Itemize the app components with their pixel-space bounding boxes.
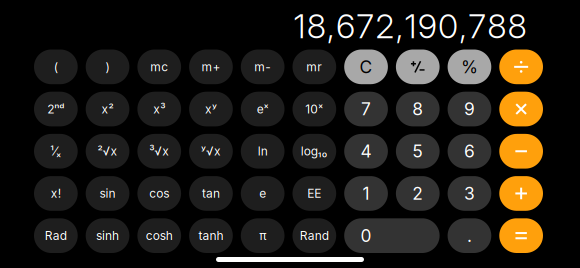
button[interactable]: ln xyxy=(241,134,284,169)
staticText: 0 xyxy=(438,6,458,46)
staticText: 2ⁿᵈ xyxy=(47,102,64,116)
button[interactable]: ʸ√x xyxy=(189,134,233,169)
staticText: ¹⁄ₓ xyxy=(50,144,61,158)
staticText: ³√x xyxy=(149,144,169,158)
button[interactable]: ) xyxy=(86,49,129,84)
staticText: C xyxy=(360,56,373,77)
staticText: ²√x xyxy=(98,144,118,158)
staticText: 8 xyxy=(487,6,506,46)
button[interactable]: 7 xyxy=(344,92,388,126)
staticText: 1 xyxy=(363,183,370,204)
button[interactable]: EE xyxy=(292,176,336,211)
button[interactable]: 9 xyxy=(448,92,491,126)
staticText: 7 xyxy=(356,6,374,46)
button[interactable]: 2 xyxy=(396,176,440,211)
button[interactable]: log₁₀ xyxy=(292,134,336,169)
staticText: Rand xyxy=(300,228,329,243)
button[interactable]: Plus xyxy=(499,176,543,211)
button[interactable]: Rand xyxy=(292,218,336,253)
staticText: π xyxy=(259,228,266,243)
button[interactable]: cosh xyxy=(137,218,181,253)
staticText: m- xyxy=(254,60,271,74)
button[interactable]: π xyxy=(241,218,284,253)
button[interactable]: ²√x xyxy=(86,134,129,169)
staticText: ) xyxy=(106,60,110,74)
button[interactable]: mc xyxy=(137,49,181,84)
button[interactable]: Divide xyxy=(499,49,543,84)
staticText: log₁₀ xyxy=(301,144,328,158)
staticText: 9 xyxy=(418,6,437,46)
staticText: xʸ xyxy=(205,102,217,116)
staticText: 6 xyxy=(464,141,475,162)
staticText: 8 xyxy=(307,6,326,46)
button[interactable]: e xyxy=(241,176,284,211)
button[interactable]: m+ xyxy=(189,49,233,84)
button[interactable]: 2ⁿᵈ xyxy=(34,92,78,126)
staticText: x³ xyxy=(153,102,165,116)
button[interactable]: tan xyxy=(189,176,233,211)
button[interactable]: Rad xyxy=(34,218,78,253)
staticText: 9 xyxy=(464,99,475,120)
button[interactable]: 8 xyxy=(396,92,440,126)
button[interactable]: ( xyxy=(34,49,78,84)
staticText: cos xyxy=(149,186,169,201)
staticText: ʸ√x xyxy=(201,144,221,158)
staticText: tan xyxy=(202,186,220,201)
staticText: ln xyxy=(258,144,268,158)
staticText: x! xyxy=(51,186,61,201)
staticText: tanh xyxy=(198,228,223,243)
button[interactable]: tanh xyxy=(189,218,233,253)
button[interactable]: m- xyxy=(241,49,284,84)
staticText: 1 xyxy=(294,6,306,46)
staticText: mc xyxy=(150,60,168,74)
staticText: 0 xyxy=(361,225,372,246)
staticText: , xyxy=(327,6,335,46)
staticText: e xyxy=(259,186,266,201)
button[interactable]: Plus minus xyxy=(396,49,440,84)
staticText: cosh xyxy=(146,228,173,243)
staticText: 1 xyxy=(405,6,417,46)
staticText: 4 xyxy=(361,141,372,162)
button[interactable]: 4 xyxy=(344,134,388,169)
button[interactable]: cos xyxy=(137,176,181,211)
button[interactable]: 3 xyxy=(448,176,491,211)
button[interactable]: 10ˣ xyxy=(292,92,336,126)
staticText: sin xyxy=(100,186,116,201)
button[interactable]: x³ xyxy=(137,92,181,126)
staticText: . xyxy=(467,225,472,246)
staticText: 10ˣ xyxy=(305,102,323,116)
button[interactable]: sinh xyxy=(86,218,129,253)
staticText: % xyxy=(461,56,478,77)
staticText: 7 xyxy=(361,99,371,120)
button[interactable]: xʸ xyxy=(189,92,233,126)
button[interactable]: 5 xyxy=(396,134,440,169)
staticText: 3 xyxy=(464,183,475,204)
button[interactable]: eˣ xyxy=(241,92,284,126)
button[interactable]: C xyxy=(344,49,388,84)
staticText: 2 xyxy=(375,6,394,46)
button[interactable]: Equals xyxy=(499,218,543,253)
button[interactable]: 6 xyxy=(448,134,491,169)
button[interactable]: 0 xyxy=(344,218,440,253)
staticText: ( xyxy=(54,60,58,74)
button[interactable]: ¹⁄ₓ xyxy=(34,134,78,169)
button[interactable]: ³√x xyxy=(137,134,181,169)
button[interactable]: x² xyxy=(86,92,129,126)
staticText: sinh xyxy=(96,228,119,243)
button[interactable]: x! xyxy=(34,176,78,211)
staticText: m+ xyxy=(201,60,220,74)
button[interactable]: Minus xyxy=(499,134,543,169)
button[interactable]: sin xyxy=(86,176,129,211)
button[interactable]: mr xyxy=(292,49,336,84)
staticText: , xyxy=(459,6,467,46)
button[interactable]: Multiply xyxy=(499,92,543,126)
staticText: 8 xyxy=(412,99,423,120)
staticText: 8 xyxy=(507,6,526,46)
button[interactable]: 1 xyxy=(344,176,388,211)
button[interactable]: . xyxy=(448,218,491,253)
staticText: mr xyxy=(306,60,322,74)
staticText: eˣ xyxy=(257,102,269,116)
button[interactable]: Percent xyxy=(448,49,491,84)
staticText: EE xyxy=(307,186,321,201)
staticText: x² xyxy=(102,102,114,116)
